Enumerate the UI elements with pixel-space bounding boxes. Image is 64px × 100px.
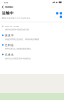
staticText: 运输中 [2, 11, 14, 15]
staticText: 快件已到达上海浦东新区网点 [5, 48, 31, 50]
staticText: 派送中 [5, 34, 14, 37]
button[interactable]: 发送消息 [60, 12, 62, 14]
staticText: 2024-05-12 10:20 [5, 25, 19, 27]
button[interactable]: 派送中 [2, 32, 62, 42]
staticText: 快递员李明正在派送，请保持电话畅通 [5, 38, 39, 40]
button[interactable]: 返回 [2, 5, 4, 9]
button[interactable]: 拨打电话 [56, 12, 58, 14]
button[interactable]: 2024-05-12 10:20 [2, 23, 62, 32]
staticText: 快件在深圳中转场完成分拣 [5, 28, 29, 31]
button[interactable]: 已发出 [2, 52, 62, 61]
staticText: 快件已从深圳宝安中转场发出 [5, 57, 31, 60]
staticText: 顺丰速运 · 预计今天18:00前送达 [4, 17, 30, 19]
staticText: 物流跟踪 [5, 6, 13, 8]
staticText: 已到达 [5, 43, 14, 47]
button[interactable]: 更多 [60, 16, 62, 18]
staticText: 已发出 [5, 53, 14, 56]
button[interactable]: 已到达 [2, 42, 62, 52]
staticText: 9:41 [4, 1, 8, 4]
